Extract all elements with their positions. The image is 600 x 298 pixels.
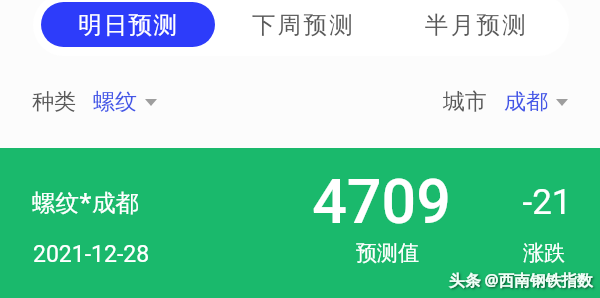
button[interactable]: 螺纹*成都 <box>0 148 600 298</box>
other: 展开种类 <box>145 99 157 106</box>
staticText: 半月预测 <box>425 10 528 40</box>
staticText: 城市 <box>443 88 487 116</box>
staticText: 下周预测 <box>252 10 355 40</box>
staticText: 成都 <box>504 88 548 116</box>
staticText: 4709 <box>312 166 451 237</box>
staticText: -21 <box>522 182 572 223</box>
button[interactable]: 下周预测 <box>233 2 373 47</box>
staticText: 涨跌 <box>523 240 565 266</box>
staticText: 螺纹*成都 <box>32 186 139 218</box>
button[interactable]: 半月预测 <box>406 2 546 47</box>
staticText: 螺纹 <box>93 88 137 116</box>
staticText: 明日预测 <box>78 10 179 40</box>
button[interactable]: 种类 <box>32 86 157 118</box>
other: 展开城市 <box>556 99 568 106</box>
staticText: 种类 <box>32 88 76 116</box>
button[interactable]: 城市 <box>443 86 568 118</box>
staticText: 预测值 <box>356 240 419 266</box>
staticText: 2021-12-28 <box>33 241 150 268</box>
button[interactable]: 明日预测 <box>41 2 215 47</box>
staticText: 头条 @西南钢铁指数 <box>449 269 593 290</box>
